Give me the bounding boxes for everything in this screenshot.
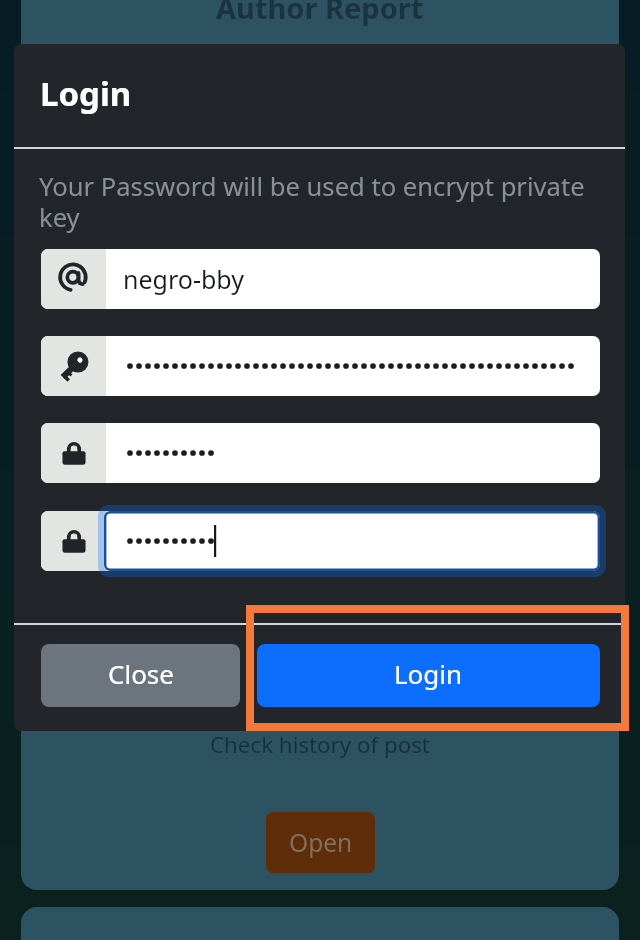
button[interactable]: Login: [257, 644, 600, 707]
staticText: Open: [289, 826, 353, 859]
staticText: Login: [394, 656, 463, 691]
button[interactable]: Username: [41, 249, 600, 309]
button[interactable]: Password: [41, 511, 600, 571]
button[interactable]: Password: [41, 336, 600, 396]
button[interactable]: Close: [41, 644, 240, 707]
other: Password: [59, 438, 89, 468]
staticText: Check history of post: [210, 729, 430, 759]
staticText: Login: [40, 71, 132, 116]
button[interactable]: Password: [41, 423, 600, 483]
staticText: Author Report: [216, 0, 424, 27]
other: Username: [56, 261, 92, 297]
staticText: Close: [108, 656, 174, 691]
staticText: negro-bby: [123, 262, 244, 296]
other: Password: [59, 526, 89, 556]
staticText: Your Password will be used to encrypt pr…: [39, 169, 594, 235]
button[interactable]: Open: [266, 812, 375, 873]
other: Password: [56, 349, 91, 384]
